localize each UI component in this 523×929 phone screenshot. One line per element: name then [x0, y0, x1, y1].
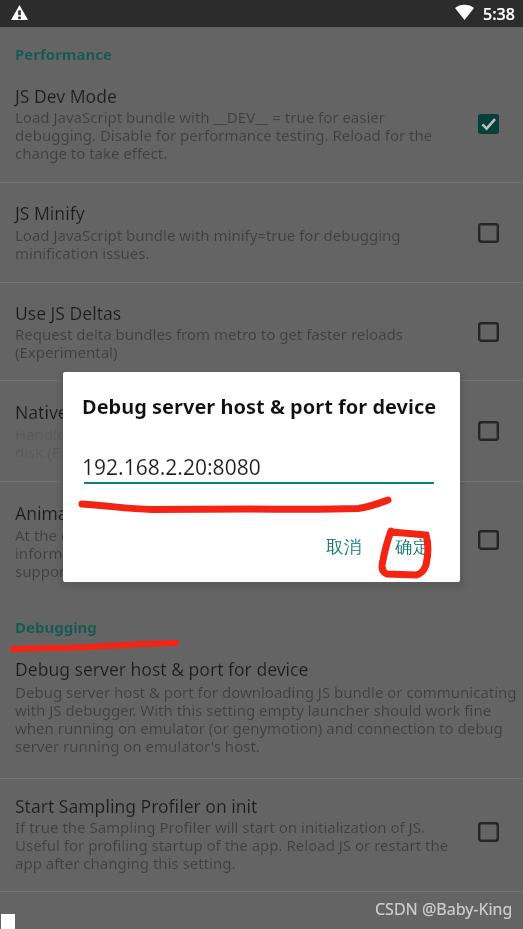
staticText: Start Sampling Profiler on init	[15, 794, 258, 818]
button[interactable]: Use JS Deltas	[0, 282, 523, 380]
staticText: Debug server host & port for device	[15, 657, 309, 681]
staticText: 5:38	[483, 3, 515, 25]
staticText: Debug server host & port for downloading…	[15, 682, 520, 757]
button[interactable]: 取消	[310, 524, 374, 564]
staticText: JS Dev Mode	[15, 84, 117, 108]
staticText: If true the Sampling Profiler will start…	[15, 817, 455, 874]
staticText: 确定	[395, 536, 430, 558]
staticText: Performance	[15, 44, 112, 64]
staticText: Load JavaScript bundle with minify=true …	[15, 225, 455, 264]
staticText: Native Dev Mode	[15, 400, 156, 424]
staticText: JS Minify	[15, 201, 85, 225]
staticText: 192.168.2.20:8080	[82, 453, 261, 482]
button[interactable]: 确定	[379, 524, 443, 564]
staticText: At the end of the animation, send the ev…	[15, 525, 455, 582]
button[interactable]: Native Dev Mode	[0, 380, 523, 481]
staticText: Animations	[15, 501, 109, 525]
other: Warning	[11, 5, 28, 20]
staticText: 取消	[326, 536, 361, 558]
button[interactable]: Animations	[0, 481, 523, 600]
staticText: Handle exceptions and write logs of ever…	[15, 424, 455, 463]
button[interactable]: JS Dev Mode	[0, 70, 523, 182]
staticText: Debug server host & port for device	[82, 393, 437, 420]
staticText: Use JS Deltas	[15, 301, 122, 325]
button[interactable]: Debug server host & port for device	[0, 655, 523, 778]
other: Wi-Fi	[455, 5, 474, 20]
staticText: Load JavaScript bundle with __DEV__ = tr…	[15, 107, 455, 164]
staticText: CSDN @Baby-King	[375, 898, 513, 920]
button[interactable]: Start Sampling Profiler on init	[0, 778, 523, 891]
button[interactable]: JS Minify	[0, 182, 523, 282]
staticText: Debugging	[15, 617, 97, 637]
staticText: Request delta bundles from metro to get …	[15, 324, 455, 363]
